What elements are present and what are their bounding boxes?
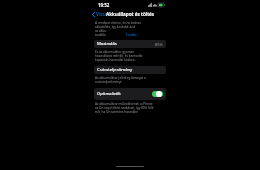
staticText: Maximális kapacitás — [97, 41, 127, 47]
staticText: Vissza — [96, 11, 110, 17]
staticText: Ez az akkumulátor gyorsan — [95, 50, 135, 54]
staticText: Tovább… — [126, 33, 139, 37]
button[interactable]: Csúcsteljesítmény kezelése — [94, 66, 166, 74]
staticText: Az akkumulátor jelenleg támogat a teljes — [95, 76, 151, 80]
staticText: Csúcsteljesítmény kezelése — [97, 67, 137, 73]
button[interactable]: Optimalizált akkutöltés — [94, 88, 166, 100]
button[interactable]: Tovább… — [126, 33, 139, 37]
button[interactable]: Vissza — [87, 10, 113, 18]
staticText: akkutöltés, így kevésbé avul — [95, 25, 136, 29]
staticText: 19:52 — [98, 2, 110, 8]
staticText: kapacitás használat közben. — [95, 58, 136, 62]
button[interactable]: Maximális kapacitás — [94, 40, 166, 48]
staticText: A rendszer elemzi, és ha kedvez — [95, 21, 141, 25]
staticText: Az akkumulátor működésének a iPhone megt… — [95, 102, 157, 106]
staticText: további tudnivalókért. — [95, 33, 125, 37]
staticText: 85% — [155, 42, 163, 47]
staticText: az akku. — [95, 29, 107, 33]
staticText: használatot mérték, és kevesebb — [95, 54, 143, 58]
staticText: Akkuállapot és töltés — [106, 11, 155, 17]
staticText: tölt, ha Ön szeretne használni majd. — [95, 110, 141, 114]
staticText: csúcsteljesítményt. — [95, 80, 122, 84]
staticText: Optimalizált akkutöltés — [97, 91, 131, 97]
staticText: az Ön napi töltési szokásait, így 80% fö… — [95, 106, 159, 110]
button[interactable]: Optimalizált akkutöltés kapcsoló — [152, 91, 163, 97]
